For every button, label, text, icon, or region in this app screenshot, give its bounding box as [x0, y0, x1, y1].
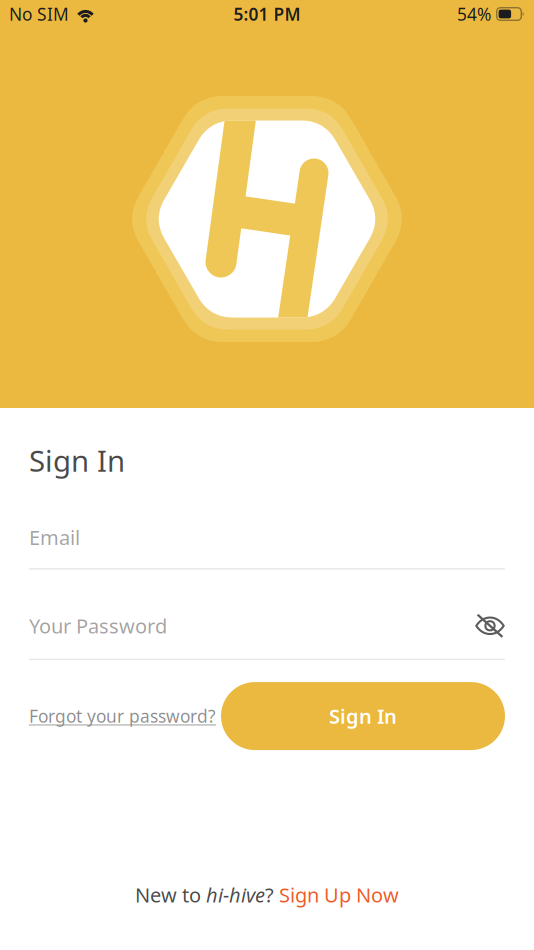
staticText: 54%: [457, 2, 491, 25]
staticText: Email: [29, 524, 80, 551]
staticText: Forgot your password?: [29, 705, 216, 728]
button[interactable]: Show password: [475, 614, 505, 638]
staticText: No SIM: [9, 2, 69, 25]
staticText: New to: [135, 881, 206, 908]
button[interactable]: Sign Up Now: [279, 881, 399, 908]
staticText: hi-hive: [206, 881, 265, 908]
staticText: Sign Up Now: [279, 881, 399, 908]
staticText: Sign In: [29, 441, 125, 480]
staticText: Your Password: [29, 612, 167, 639]
staticText: Sign In: [329, 703, 397, 729]
staticText: 5:01 PM: [233, 2, 300, 25]
button[interactable]: Forgot your password?: [29, 705, 216, 728]
button[interactable]: Sign In: [221, 682, 505, 750]
staticText: ?: [265, 881, 279, 908]
